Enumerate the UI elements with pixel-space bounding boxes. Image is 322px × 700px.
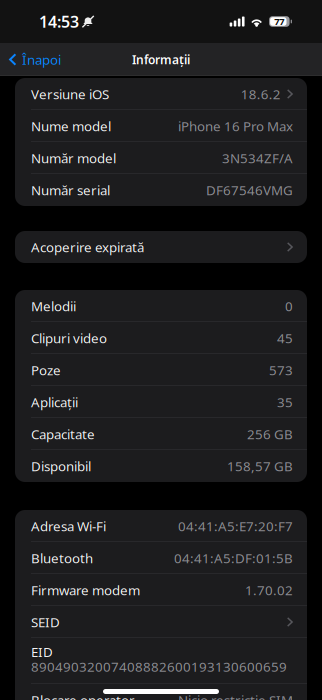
button[interactable]: Disponibil: [15, 450, 307, 482]
staticText: Aplicații: [31, 393, 78, 411]
button[interactable]: SEID: [15, 606, 307, 638]
staticText: 256 GB: [247, 425, 293, 443]
staticText: iPhone 16 Pro Max: [178, 117, 293, 135]
button[interactable]: Blocare operator: [15, 684, 307, 700]
button[interactable]: Aplicații: [15, 386, 307, 418]
staticText: Nume model: [31, 117, 111, 135]
staticText: 89049032007408882600193130600659: [31, 658, 287, 675]
button[interactable]: Capacitate: [15, 418, 307, 450]
staticText: Capacitate: [31, 425, 95, 443]
button[interactable]: Număr serial: [15, 174, 307, 206]
button[interactable]: Adresa Wi-Fi: [15, 510, 307, 542]
staticText: Număr model: [31, 149, 116, 167]
button[interactable]: Clipuri video: [15, 322, 307, 354]
staticText: 04:41:A5:E7:20:F7: [178, 517, 293, 535]
staticText: 35: [277, 393, 293, 411]
button[interactable]: Bluetooth: [15, 542, 307, 574]
staticText: 14:53: [39, 11, 79, 32]
button[interactable]: Înapoi: [0, 43, 69, 76]
staticText: Poze: [31, 361, 61, 379]
staticText: Număr serial: [31, 181, 110, 199]
button[interactable]: Melodii: [15, 290, 307, 322]
staticText: SEID: [31, 613, 60, 631]
staticText: Melodii: [31, 297, 76, 315]
staticText: EID: [31, 643, 53, 661]
staticText: Înapoi: [22, 51, 61, 68]
staticText: Clipuri video: [31, 329, 107, 347]
staticText: DF67546VMG: [206, 181, 293, 199]
button[interactable]: Nume model: [15, 110, 307, 142]
button[interactable]: Poze: [15, 354, 307, 386]
staticText: Bluetooth: [31, 549, 93, 567]
button[interactable]: EID: [15, 638, 307, 684]
button[interactable]: Firmware modem: [15, 574, 307, 606]
staticText: Nicio restricție SIM: [178, 691, 293, 700]
staticText: Versiune iOS: [31, 85, 109, 103]
staticText: Informații: [132, 51, 190, 67]
staticText: Blocare operator: [31, 691, 135, 700]
button[interactable]: Acoperire expirată: [15, 231, 307, 263]
staticText: Disponibil: [31, 457, 91, 475]
button[interactable]: Număr model: [15, 142, 307, 174]
staticText: 45: [277, 329, 293, 347]
staticText: 18.6.2: [241, 85, 281, 103]
button[interactable]: Versiune iOS: [15, 78, 307, 110]
staticText: 1.70.02: [245, 581, 293, 599]
staticText: Adresa Wi-Fi: [31, 517, 106, 535]
staticText: 77: [274, 15, 284, 28]
staticText: 0: [285, 297, 293, 315]
staticText: 04:41:A5:DF:01:5B: [174, 549, 293, 567]
staticText: 3N534ZF/A: [222, 149, 293, 167]
staticText: Acoperire expirată: [31, 238, 144, 256]
staticText: 573: [269, 361, 293, 379]
staticText: Firmware modem: [31, 581, 140, 599]
staticText: 158,57 GB: [227, 457, 293, 475]
